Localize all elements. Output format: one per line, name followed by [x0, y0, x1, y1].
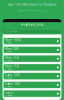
staticText: Cable 200 — [5, 73, 20, 77]
staticText: Fibre 250 — [5, 56, 19, 59]
staticText: compare broadband plans in your area — [17, 10, 46, 12]
button[interactable]: DSL 67 — [4, 90, 60, 97]
staticText: Fibre 1000 — [5, 38, 21, 42]
staticText: £23 / month — [5, 60, 12, 61]
button[interactable]: Fibre 500 — [4, 47, 60, 53]
button[interactable]: Fibre 1000 — [4, 38, 60, 44]
staticText: Fibre 500 — [5, 47, 19, 51]
button[interactable]: Cable 200 — [4, 73, 60, 79]
button[interactable]: Fibre 250 — [4, 55, 60, 62]
staticText: Cable 100 — [5, 82, 20, 86]
staticText: Search providers — [5, 31, 19, 33]
staticText: £28 / month — [5, 42, 12, 44]
staticText: DSL 67 — [5, 91, 14, 94]
staticText: Fibre 150 — [5, 65, 19, 68]
staticText: £25 / month — [5, 51, 12, 53]
button[interactable]: Fibre 150 — [4, 64, 60, 71]
staticText: £21 / month — [5, 68, 12, 70]
staticText: £19 / month — [5, 77, 12, 79]
staticText: Broadband Deals — [20, 23, 43, 26]
staticText: Over 100 Offers From 12 Providers — [8, 3, 56, 6]
button[interactable]: Cable 100 — [4, 82, 60, 88]
staticText: £15 / month — [5, 95, 12, 96]
staticText: £17 / month — [5, 86, 12, 88]
